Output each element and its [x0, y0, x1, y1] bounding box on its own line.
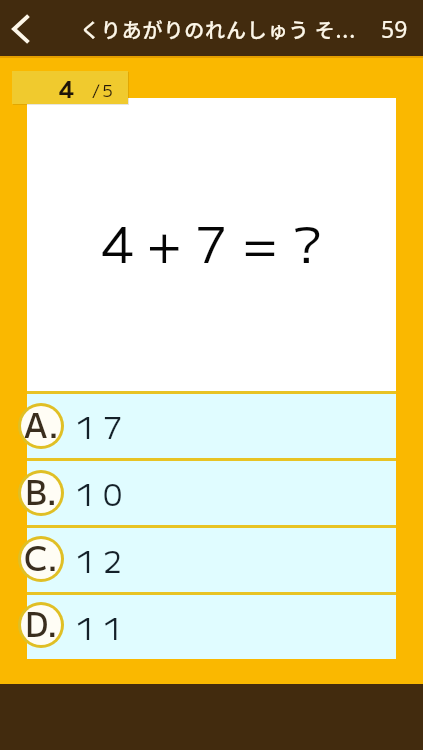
staticText: A. — [24, 406, 59, 440]
staticText: 5 — [102, 77, 113, 102]
button[interactable]: 1 2 — [27, 528, 396, 592]
staticText: B. — [25, 473, 58, 507]
button[interactable]: 1 7 — [27, 394, 396, 458]
staticText: 1 7 — [76, 405, 122, 448]
button[interactable]: Back — [0, 9, 40, 49]
staticText: / — [92, 77, 100, 102]
staticText: C. — [24, 539, 58, 573]
staticText: 59 — [381, 13, 408, 44]
button[interactable]: 4 — [12, 71, 128, 104]
staticText: D. — [25, 605, 58, 639]
staticText: 1 0 — [76, 472, 122, 515]
staticText: 1 1 — [76, 606, 122, 649]
staticText: 4 + 7 = ? — [102, 206, 321, 277]
staticText: 4 — [59, 71, 74, 104]
staticText: 1 2 — [76, 539, 122, 582]
button[interactable]: 1 0 — [27, 461, 396, 525]
staticText: くりあがりのれんしゅう そ... — [80, 15, 356, 44]
button[interactable]: 1 1 — [27, 595, 396, 659]
